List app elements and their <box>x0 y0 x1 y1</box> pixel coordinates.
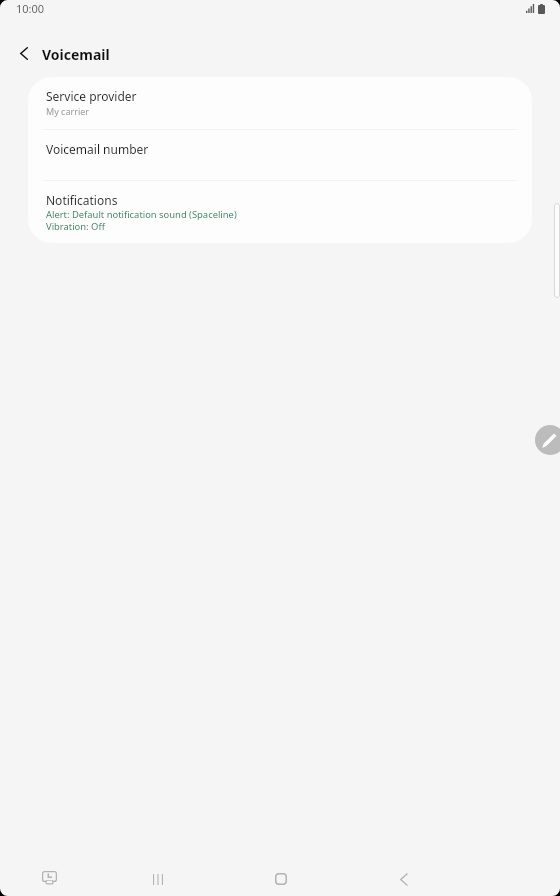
button[interactable]: Hide keyboard <box>31 859 68 896</box>
button[interactable]: Home <box>263 861 299 896</box>
button[interactable]: Voicemail number <box>28 130 532 180</box>
staticText: My carrier <box>46 105 90 117</box>
staticText: Voicemail number <box>46 141 149 157</box>
button[interactable]: Notifications <box>28 181 532 243</box>
staticText: Vibration: Off <box>46 220 105 233</box>
button[interactable]: Service provider <box>28 77 532 129</box>
button[interactable]: Compose message <box>535 425 560 455</box>
button[interactable]: Back <box>385 861 421 896</box>
staticText: Notifications <box>46 192 118 208</box>
staticText: Alert: Default notification sound (Space… <box>46 208 237 221</box>
staticText: Voicemail <box>42 45 110 64</box>
button[interactable]: Recent apps <box>140 861 176 896</box>
staticText: 10:00 <box>16 1 45 16</box>
staticText: Service provider <box>46 88 137 104</box>
button[interactable]: Navigate up <box>6 36 41 71</box>
